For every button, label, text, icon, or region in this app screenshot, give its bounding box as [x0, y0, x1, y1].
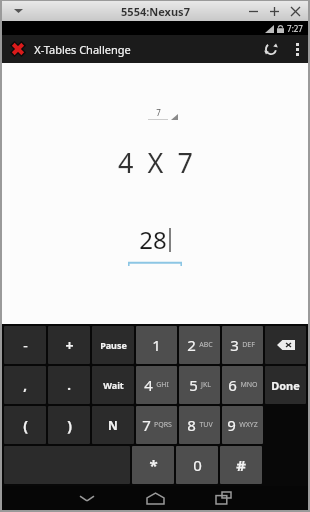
staticText: 1 [152, 335, 161, 355]
button[interactable]: Refresh [256, 35, 286, 63]
button[interactable]: * [132, 446, 174, 484]
button[interactable]: 7 [136, 406, 177, 444]
button[interactable]: + [48, 326, 90, 364]
button[interactable]: minimize [246, 4, 260, 18]
staticText: X-Tables Challenge [34, 42, 131, 57]
staticText: 7:27 [287, 23, 303, 34]
staticText: PQRS [154, 420, 172, 430]
button[interactable]: 28 [128, 223, 182, 266]
staticText: 5 [189, 375, 198, 395]
staticText: 7 [142, 415, 151, 435]
button[interactable]: Done [265, 366, 306, 404]
button[interactable]: 7 [148, 107, 178, 120]
button[interactable]: Recent apps [196, 486, 250, 510]
button[interactable]: 6 [222, 366, 263, 404]
staticText: ( [23, 416, 28, 435]
staticText: GHI [156, 380, 169, 390]
button[interactable]: Wait [92, 366, 134, 404]
staticText: 8 [187, 415, 196, 435]
staticText: Done [271, 378, 300, 393]
button[interactable]: 2 [179, 326, 220, 364]
button[interactable]: Backspace [265, 326, 306, 364]
staticText: . [67, 376, 71, 394]
button[interactable]: 9 [222, 406, 263, 444]
staticText: 4 [144, 375, 153, 395]
button[interactable]: X-Tables Challenge [6, 37, 131, 61]
button[interactable]: ) [48, 406, 90, 444]
staticText: 6 [228, 375, 237, 395]
staticText: # [236, 455, 246, 475]
button[interactable]: 1 [136, 326, 177, 364]
staticText: + [65, 336, 74, 355]
button[interactable]: ( [4, 406, 46, 444]
staticText: JKL [201, 380, 211, 390]
button[interactable]: - [4, 326, 46, 364]
staticText: - [23, 336, 28, 355]
staticText: DEF [242, 340, 255, 350]
staticText: * [149, 455, 158, 475]
staticText: ABC [199, 340, 213, 350]
staticText: WXYZ [239, 420, 258, 430]
button[interactable]: 3 [222, 326, 263, 364]
staticText: 7 [156, 107, 161, 118]
staticText: ) [67, 416, 72, 435]
staticText: 3 [230, 335, 239, 355]
staticText: TUV [199, 420, 213, 430]
button[interactable]: N [92, 406, 134, 444]
button[interactable]: . [48, 366, 90, 404]
staticText: 4 X 7 [118, 144, 193, 181]
button[interactable]: Home [128, 486, 182, 510]
staticText: Wait [103, 379, 124, 391]
staticText: N [108, 417, 118, 433]
staticText: 2 [187, 335, 196, 355]
button[interactable]: maximize [267, 4, 281, 18]
button[interactable]: , [4, 366, 46, 404]
button[interactable]: close [288, 4, 302, 18]
button[interactable]: Window menu [10, 3, 26, 19]
staticText: Pause [100, 339, 127, 351]
staticText: 5554:Nexus7 [121, 4, 190, 19]
staticText: 9 [227, 415, 236, 435]
button[interactable]: 5 [179, 366, 220, 404]
button[interactable]: More options [286, 35, 308, 63]
staticText: 28 [139, 223, 167, 256]
staticText: MNO [240, 380, 258, 390]
button[interactable]: Pause [92, 326, 134, 364]
staticText: 0 [193, 455, 202, 475]
button[interactable]: # [220, 446, 262, 484]
button[interactable]: 0 [176, 446, 218, 484]
button[interactable]: 4 [136, 366, 177, 404]
button[interactable]: 8 [179, 406, 220, 444]
staticText: , [23, 376, 27, 394]
button[interactable]: Hide keyboard [60, 486, 114, 510]
